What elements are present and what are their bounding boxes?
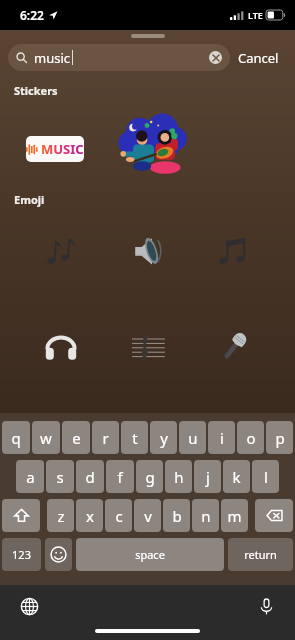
staticText: y bbox=[160, 428, 168, 448]
button[interactable]: Clear search bbox=[209, 51, 222, 64]
button[interactable]: g bbox=[136, 460, 163, 493]
button[interactable]: Speaker bbox=[122, 225, 174, 277]
staticText: space bbox=[135, 547, 165, 562]
button[interactable]: e bbox=[62, 421, 90, 454]
button[interactable]: w bbox=[32, 421, 60, 454]
staticText: r bbox=[102, 428, 109, 448]
button[interactable]: v bbox=[134, 499, 161, 532]
button[interactable]: Musical notes bbox=[35, 225, 87, 277]
staticText: b bbox=[172, 506, 182, 526]
staticText: l bbox=[264, 467, 268, 487]
button[interactable]: music bbox=[8, 44, 230, 71]
button[interactable]: s bbox=[46, 460, 74, 493]
staticText: 6:22 bbox=[20, 7, 44, 23]
button[interactable]: j bbox=[194, 460, 221, 493]
staticText: a bbox=[26, 467, 35, 487]
button[interactable]: Musical note bbox=[208, 225, 260, 277]
button[interactable]: Shift bbox=[2, 499, 40, 532]
staticText: z bbox=[57, 506, 65, 526]
staticText: Cancel bbox=[238, 49, 279, 67]
button[interactable]: n bbox=[192, 499, 219, 532]
button[interactable]: r bbox=[92, 421, 119, 454]
button[interactable]: Emoji bbox=[45, 538, 72, 571]
button[interactable]: Microphone bbox=[208, 321, 260, 373]
staticText: 123 bbox=[12, 547, 31, 562]
button[interactable]: u bbox=[179, 421, 206, 454]
button[interactable]: b bbox=[163, 499, 190, 532]
button[interactable]: k bbox=[223, 460, 250, 493]
button[interactable]: q bbox=[2, 421, 30, 454]
button[interactable]: h bbox=[165, 460, 192, 493]
staticText: v bbox=[144, 506, 152, 526]
button[interactable]: Headphone bbox=[35, 321, 87, 373]
staticText: q bbox=[11, 428, 21, 448]
staticText: e bbox=[72, 428, 81, 448]
staticText: Emoji bbox=[14, 192, 45, 207]
staticText: g bbox=[145, 467, 155, 487]
staticText: music bbox=[34, 49, 71, 67]
staticText: h bbox=[174, 467, 184, 487]
button[interactable]: Dictate bbox=[253, 593, 279, 619]
button[interactable]: c bbox=[105, 499, 132, 532]
button[interactable]: Music sticker bbox=[26, 136, 84, 162]
button[interactable]: Change keyboard language bbox=[16, 593, 42, 619]
staticText: x bbox=[86, 506, 94, 526]
staticText: f bbox=[117, 467, 123, 487]
button[interactable]: y bbox=[150, 421, 177, 454]
staticText: s bbox=[56, 467, 64, 487]
button[interactable]: Backspace bbox=[255, 499, 293, 532]
staticText: u bbox=[188, 428, 198, 448]
button[interactable]: l bbox=[252, 460, 279, 493]
staticText: d bbox=[85, 467, 95, 487]
button[interactable]: i bbox=[208, 421, 235, 454]
button[interactable]: o bbox=[237, 421, 264, 454]
staticText: MUSIC bbox=[41, 140, 84, 158]
button[interactable]: m bbox=[221, 499, 248, 532]
button[interactable]: return bbox=[228, 538, 293, 571]
staticText: c bbox=[115, 506, 123, 526]
staticText: k bbox=[232, 467, 241, 487]
staticText: t bbox=[132, 428, 138, 448]
button[interactable]: Couple with guitar sticker bbox=[119, 108, 189, 178]
staticText: w bbox=[40, 428, 52, 448]
button[interactable]: d bbox=[76, 460, 104, 493]
staticText: o bbox=[246, 428, 256, 448]
button[interactable]: t bbox=[121, 421, 148, 454]
staticText: return bbox=[244, 547, 277, 562]
button[interactable]: z bbox=[47, 499, 74, 532]
button[interactable]: a bbox=[16, 460, 44, 493]
button[interactable]: f bbox=[106, 460, 134, 493]
staticText: i bbox=[220, 428, 224, 448]
staticText: m bbox=[227, 506, 242, 526]
staticText: j bbox=[206, 467, 210, 487]
staticText: LTE bbox=[248, 9, 263, 21]
button[interactable]: space bbox=[76, 538, 224, 571]
button[interactable]: Cancel bbox=[230, 45, 287, 71]
button[interactable]: 123 bbox=[2, 538, 41, 571]
button[interactable]: Musical score bbox=[122, 321, 174, 373]
button[interactable]: p bbox=[266, 421, 293, 454]
button[interactable]: x bbox=[76, 499, 103, 532]
staticText: n bbox=[201, 506, 211, 526]
staticText: p bbox=[275, 428, 285, 448]
staticText: Stickers bbox=[14, 83, 58, 98]
